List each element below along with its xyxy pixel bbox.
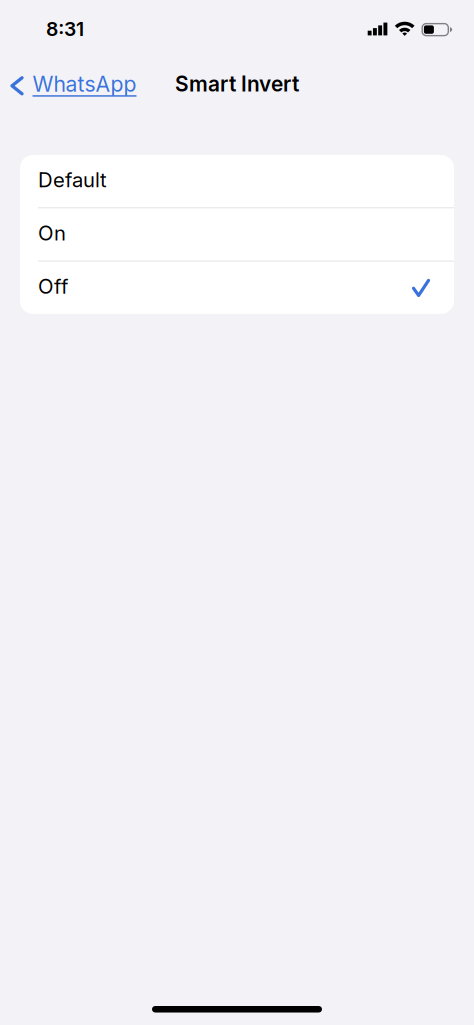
- staticText: Off: [38, 274, 68, 299]
- staticText: 8:31: [46, 17, 84, 41]
- button[interactable]: Off: [20, 262, 454, 314]
- button[interactable]: Default: [20, 155, 454, 207]
- button[interactable]: WhatsApp: [0, 71, 136, 97]
- staticText: WhatsApp: [32, 71, 136, 97]
- staticText: On: [38, 221, 66, 245]
- staticText: Default: [38, 168, 107, 192]
- staticText: Smart Invert: [175, 71, 299, 97]
- button[interactable]: On: [20, 208, 454, 261]
